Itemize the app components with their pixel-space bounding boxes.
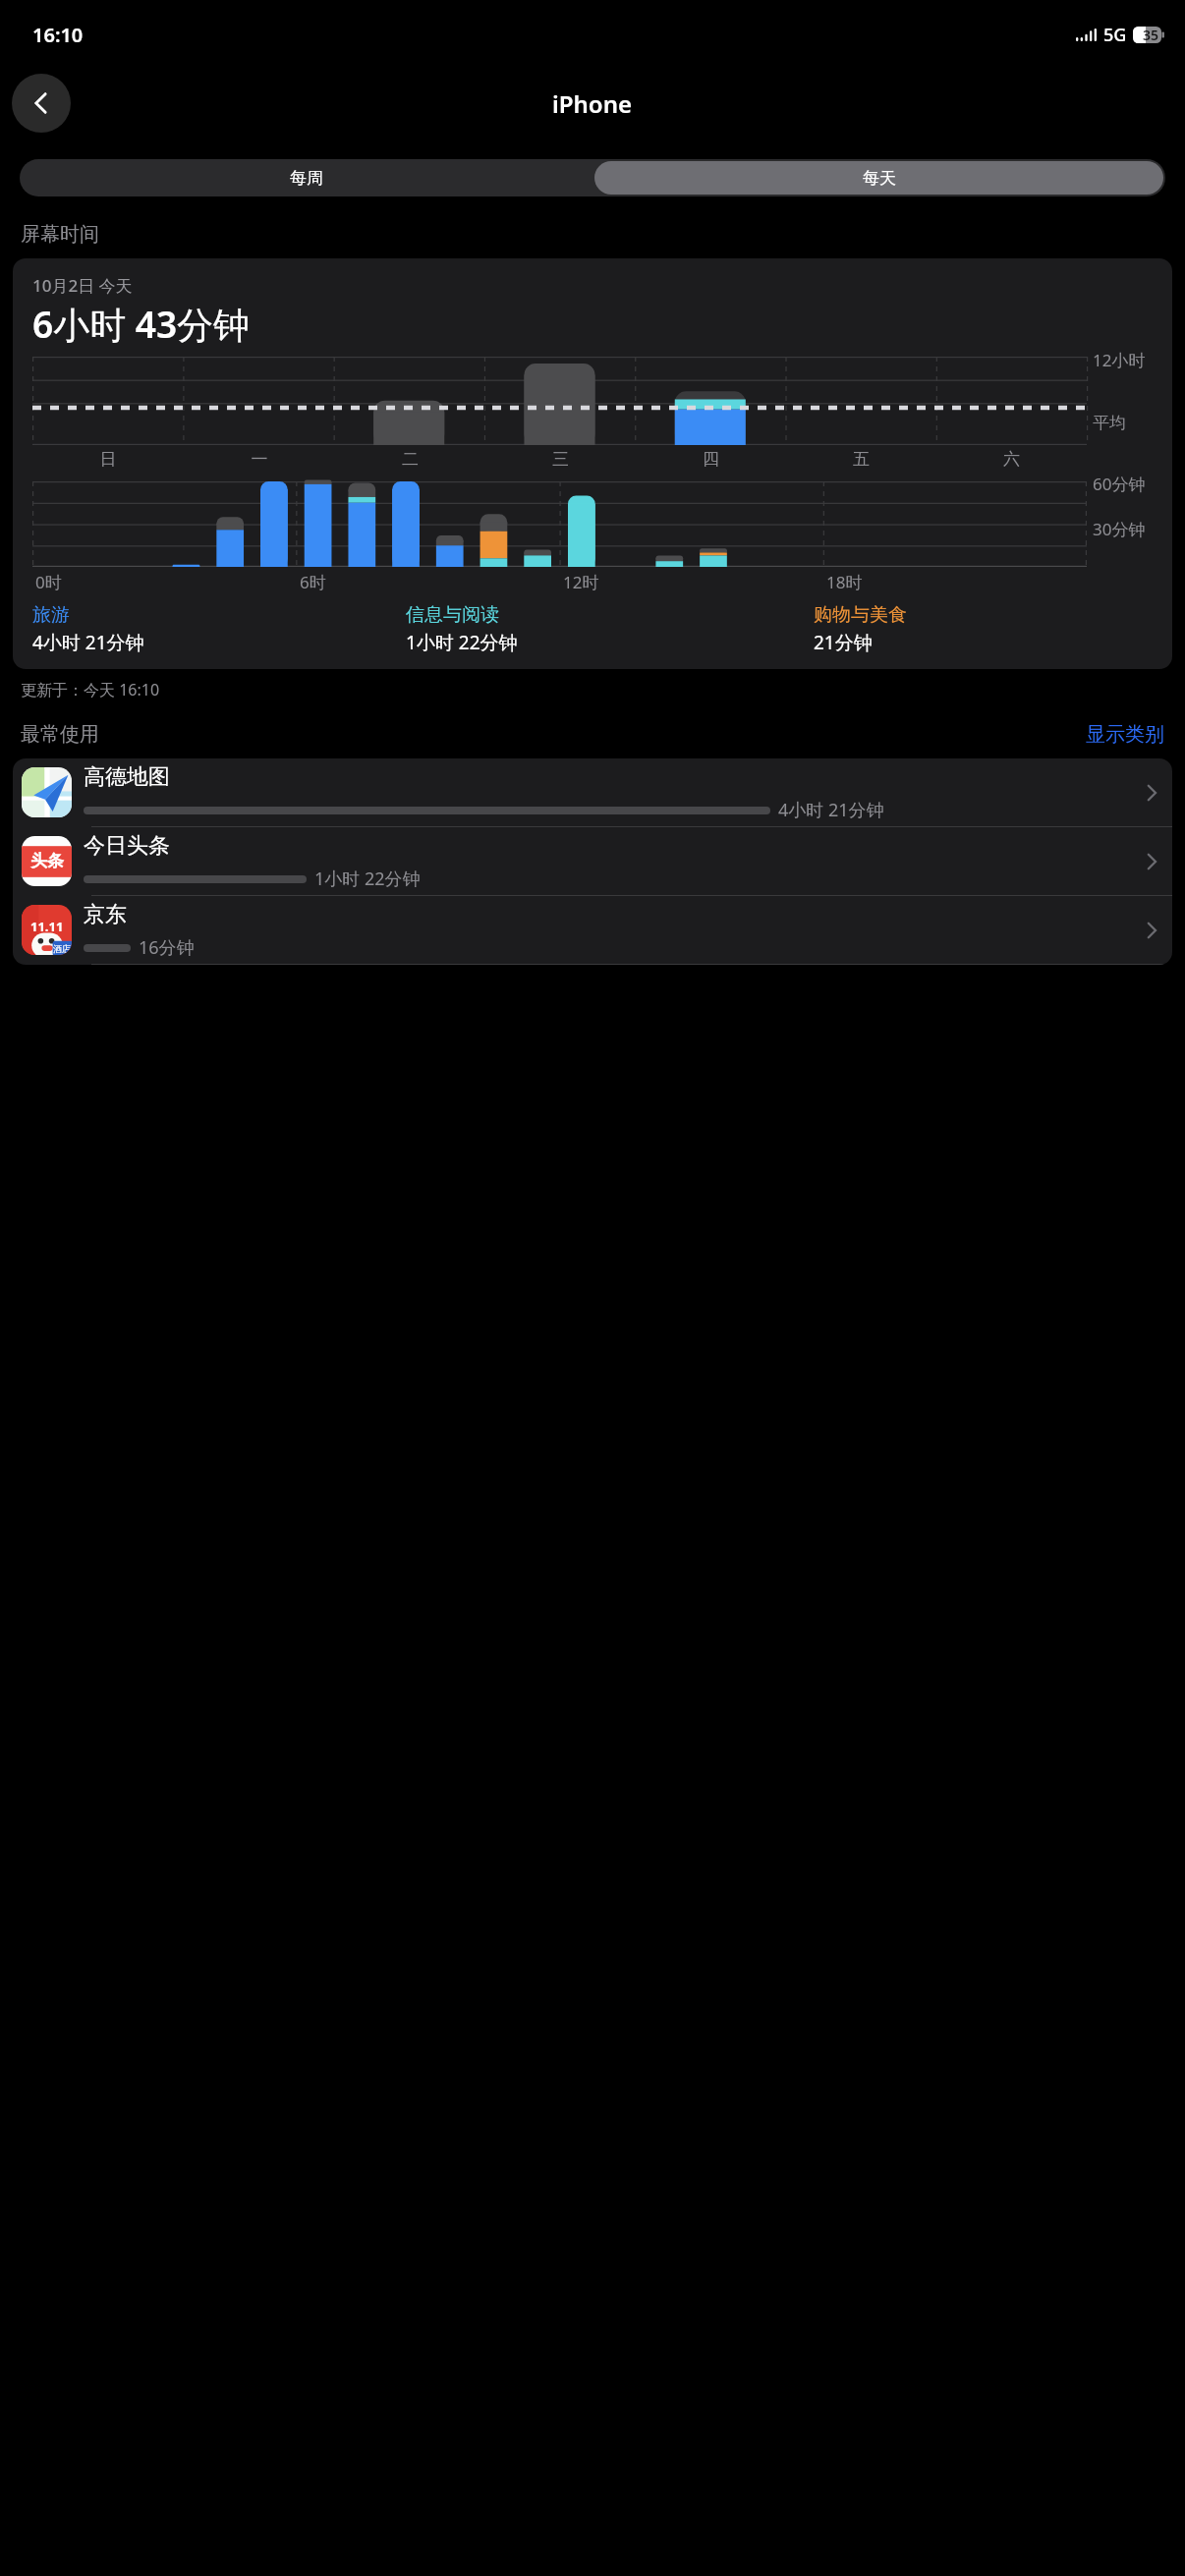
staticText: 四 [636, 449, 786, 470]
staticText: 12小时 [1093, 349, 1146, 371]
staticText: 6小时 43分钟 [32, 299, 251, 349]
staticText: 旅游 [32, 603, 70, 627]
staticText: 18时 [826, 571, 863, 593]
staticText: 16分钟 [139, 935, 195, 960]
other: Open 今日头条 [1131, 827, 1172, 895]
staticText: 头条 [30, 851, 64, 871]
staticText: 五 [786, 449, 936, 470]
staticText: 更新于：今天 16:10 [21, 679, 160, 700]
staticText: iPhone [552, 87, 633, 120]
button[interactable]: 头条 [13, 827, 1172, 895]
other: Open 京东 [1131, 896, 1172, 964]
button[interactable]: 11.11 [13, 896, 1172, 964]
staticText: 信息与阅读 [406, 603, 499, 627]
staticText: 六 [936, 449, 1087, 470]
staticText: 京东 [84, 901, 127, 928]
staticText: 酒店 [53, 943, 71, 954]
staticText: 5G [1103, 23, 1127, 47]
staticText: 今日头条 [84, 832, 170, 860]
staticText: 每周 [290, 168, 323, 189]
staticText: 一 [184, 449, 335, 470]
button[interactable]: 每天 [594, 161, 1163, 195]
staticText: 60分钟 [1093, 473, 1146, 495]
staticText: 0时 [35, 571, 62, 593]
button[interactable]: 高德地图 [13, 758, 1172, 826]
staticText: 30分钟 [1093, 518, 1146, 540]
staticText: 35 [1143, 26, 1159, 44]
staticText: 高德地图 [84, 763, 170, 791]
staticText: 三 [485, 449, 636, 470]
staticText: 4小时 21分钟 [32, 630, 144, 655]
staticText: 11.11 [30, 918, 64, 935]
staticText: 显示类别 [1086, 722, 1164, 747]
button[interactable]: Back [12, 74, 71, 133]
staticText: 21分钟 [814, 630, 873, 655]
staticText: 1小时 22分钟 [406, 630, 518, 655]
button[interactable]: 每周 [20, 159, 592, 196]
staticText: 平均 [1093, 413, 1126, 433]
staticText: 12时 [563, 571, 599, 593]
other: Open 高德地图 [1131, 758, 1172, 826]
staticText: 16:10 [32, 22, 84, 48]
staticText: 6时 [300, 571, 326, 593]
staticText: 购物与美食 [814, 603, 907, 627]
button[interactable]: 显示类别 [1086, 722, 1164, 747]
staticText: 日 [32, 449, 184, 470]
staticText: 10月2日 今天 [32, 274, 133, 297]
staticText: 每天 [863, 168, 896, 189]
staticText: 最常使用 [21, 722, 99, 747]
staticText: 1小时 22分钟 [314, 867, 421, 891]
staticText: 二 [335, 449, 485, 470]
staticText: 4小时 21分钟 [778, 798, 884, 822]
staticText: 屏幕时间 [21, 222, 99, 247]
